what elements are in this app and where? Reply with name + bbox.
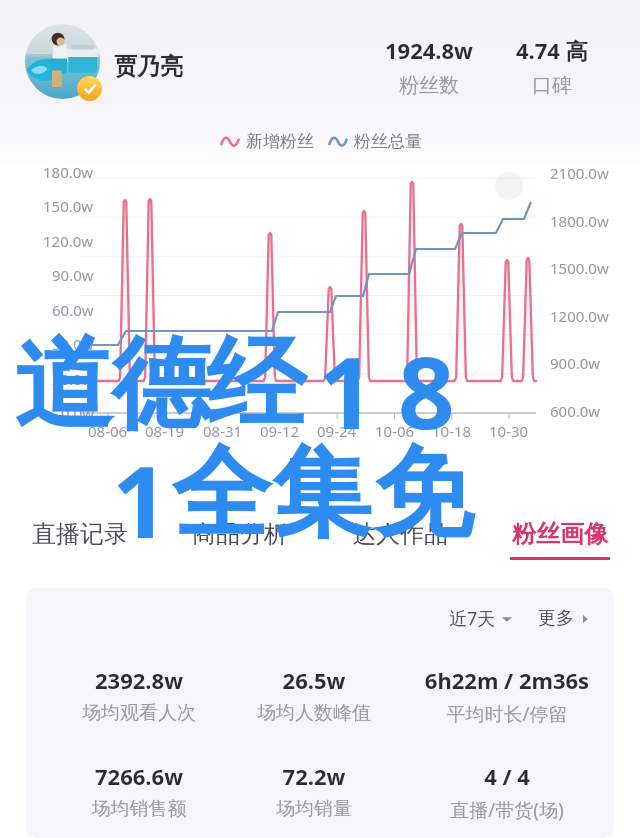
staticText: 09-12 [260, 421, 300, 441]
staticText: 贾乃亮 [114, 52, 183, 81]
button[interactable]: 72.2w [224, 761, 404, 821]
staticText: 09-24 [317, 421, 357, 441]
button[interactable]: 新增粉丝 [221, 131, 314, 152]
staticText: 10-30 [489, 421, 529, 441]
staticText: 道 [14, 323, 113, 448]
button[interactable]: 更多 [538, 607, 590, 630]
staticText: 6h22m / 2m36s [417, 665, 597, 695]
staticText: 150.0w [43, 196, 94, 216]
staticText: 4 / 4 [417, 761, 597, 791]
staticText: 近7天 [449, 606, 496, 631]
staticText: 1 [318, 323, 375, 458]
staticText: 场均销量 [224, 797, 404, 821]
staticText: 1924.8w [385, 35, 473, 65]
button[interactable]: 达人作品 [320, 511, 480, 567]
staticText: 26.5w [224, 665, 404, 695]
staticText: 7266.6w [49, 761, 229, 791]
staticText: 2100.0w [550, 163, 609, 183]
staticText: 商品分析 [192, 519, 288, 549]
staticText: 1200.0w [550, 306, 609, 326]
button[interactable]: 粉丝画像 [480, 511, 640, 567]
staticText: 平均时长/停留 [417, 701, 597, 727]
staticText: 900.0w [550, 353, 601, 373]
staticText: 08-06 [88, 421, 128, 441]
staticText: 08-31 [203, 421, 243, 441]
staticText: 4.74 高 [516, 35, 588, 65]
staticText: 粉丝画像 [512, 519, 608, 549]
button[interactable]: 1924.8w [369, 35, 489, 98]
staticText: 场均观看人次 [49, 701, 229, 725]
staticText: 免 [374, 432, 473, 557]
button[interactable]: 6h22m / 2m36s [417, 665, 597, 727]
staticText: 10-06 [375, 421, 415, 441]
staticText: 120.0w [43, 231, 94, 251]
staticText: 德 [111, 323, 210, 448]
staticText: 粉丝数 [399, 73, 459, 98]
button[interactable]: 7266.6w [49, 761, 229, 821]
staticText: 30.0w [52, 334, 94, 354]
staticText: 粉丝总量 [354, 131, 422, 152]
staticText: 更多 [538, 607, 574, 630]
staticText: 08-19 [145, 421, 185, 441]
staticText: 1500.0w [550, 258, 609, 278]
staticText: 直播/带货(场) [417, 797, 597, 823]
staticText: 场均销售额 [49, 797, 229, 821]
staticText: 8 [398, 323, 455, 458]
staticText: 0.0w [61, 403, 94, 423]
staticText: 2392.8w [49, 665, 229, 695]
staticText: 180.0w [43, 162, 94, 182]
staticText: 1800.0w [550, 211, 609, 231]
staticText: 1 [112, 432, 169, 567]
button[interactable]: 4.74 高 [502, 35, 602, 98]
staticText: 600.0w [550, 401, 601, 421]
staticText: 60.0w [52, 300, 94, 320]
staticText: 10-18 [432, 421, 472, 441]
button[interactable]: Profile avatar [25, 24, 101, 100]
staticText: 达人作品 [352, 519, 448, 549]
staticText: 全 [172, 432, 271, 557]
staticText: 新增粉丝 [246, 131, 314, 152]
button[interactable]: 直播记录 [0, 511, 160, 567]
button[interactable]: 4 / 4 [417, 761, 597, 823]
staticText: 90.0w [52, 265, 94, 285]
staticText: 20.0w [52, 369, 94, 389]
staticText: 口碑 [532, 73, 572, 98]
staticText: 集 [272, 432, 371, 557]
button[interactable]: 26.5w [224, 665, 404, 725]
button[interactable]: 粉丝总量 [329, 131, 422, 152]
staticText: 场均人数峰值 [224, 701, 404, 725]
button[interactable]: 商品分析 [160, 511, 320, 567]
button[interactable]: 近7天 [449, 606, 512, 631]
staticText: 72.2w [224, 761, 404, 791]
staticText: 直播记录 [32, 519, 128, 549]
button[interactable]: 2392.8w [49, 665, 229, 725]
staticText: 经 [206, 323, 305, 448]
